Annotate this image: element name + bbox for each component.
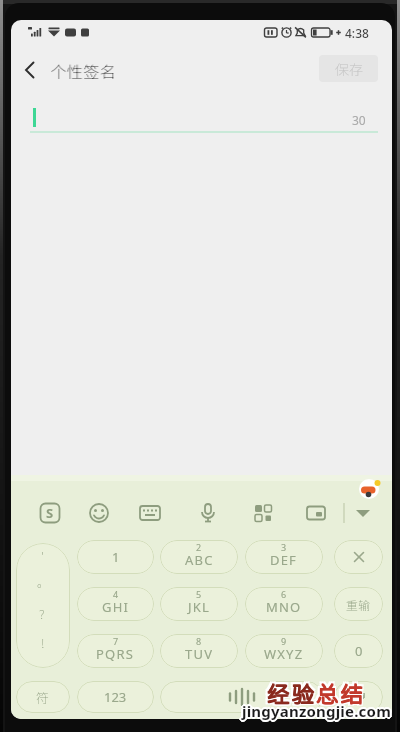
staticText: 经验总结 (265, 674, 364, 706)
button[interactable] (160, 681, 323, 713)
staticText: DEF (270, 551, 298, 569)
button[interactable] (334, 540, 383, 574)
button[interactable]: 3 (245, 540, 323, 574)
staticText: 经验总结 (267, 678, 366, 710)
button[interactable] (196, 501, 220, 525)
button[interactable]: 7 (77, 634, 154, 668)
button[interactable]: 2 (160, 540, 238, 574)
staticText: GHI (102, 598, 130, 616)
button[interactable]: S (38, 501, 62, 525)
staticText: 5 (196, 588, 202, 600)
staticText: 保存 (335, 59, 363, 79)
staticText: 经验总结 (265, 676, 364, 708)
staticText: 7 (113, 635, 119, 647)
staticText: PQRS (96, 645, 135, 663)
button[interactable] (138, 501, 162, 525)
button[interactable]: 保存 (319, 55, 378, 82)
staticText: 经验总结 (265, 678, 364, 710)
staticText: ABC (185, 551, 214, 569)
button[interactable] (304, 501, 328, 525)
staticText: ! (41, 633, 45, 652)
button[interactable]: 1 (77, 540, 154, 574)
staticText: jingyanzongjie.com (241, 702, 390, 722)
staticText: jingyanzongjie.com (243, 700, 392, 720)
staticText: WXYZ (264, 645, 304, 663)
staticText: 9 (281, 635, 287, 647)
staticText: 经验总结 (268, 677, 367, 709)
staticText: 4:38 (345, 25, 369, 41)
staticText: ? (39, 604, 45, 623)
staticText: 经验总结 (267, 676, 366, 708)
staticText: 1 (112, 548, 120, 566)
staticText: jingyanzongjie.com (242, 703, 391, 723)
staticText: 。 (37, 573, 50, 590)
button[interactable]: 5 (160, 587, 238, 621)
staticText: 123 (104, 688, 127, 706)
staticText: 0 (355, 642, 363, 660)
button[interactable]: 9 (245, 634, 323, 668)
button[interactable]: 4 (77, 587, 154, 621)
button[interactable] (16, 543, 70, 668)
staticText: jingyanzongjie.com (243, 702, 392, 722)
staticText: 2 (196, 541, 202, 553)
staticText: S (46, 504, 54, 522)
staticText: 符 (36, 688, 50, 707)
staticText: jingyanzongjie.com (241, 700, 390, 720)
staticText: JKL (188, 598, 211, 616)
button[interactable] (251, 501, 275, 525)
staticText: 经验总结 (267, 674, 366, 706)
staticText: 经验总结 (267, 676, 366, 708)
staticText: 4 (113, 588, 119, 600)
button[interactable] (87, 501, 111, 525)
staticText: jingyanzongjie.com (240, 701, 389, 721)
staticText: 8 (196, 635, 202, 647)
staticText: 经验总结 (269, 676, 368, 708)
button[interactable]: 8 (160, 634, 238, 668)
staticText: jingyanzongjie.com (242, 701, 391, 721)
staticText: 6 (281, 588, 287, 600)
staticText: jingyanzongjie.com (244, 701, 393, 721)
button[interactable]: 重输 (334, 587, 383, 621)
staticText: 个性签名 (51, 59, 118, 82)
staticText: 30 (352, 112, 366, 128)
button[interactable]: 123 (77, 681, 154, 713)
button[interactable]: 符 (16, 681, 70, 713)
staticText: 重输 (346, 596, 371, 613)
staticText: 经验总结 (269, 678, 368, 710)
staticText: 3 (281, 541, 287, 553)
staticText: 个性签名 (50, 59, 117, 82)
staticText: jingyanzongjie.com (242, 699, 391, 719)
staticText: 经验总结 (267, 677, 366, 709)
button[interactable]: 0 (334, 634, 383, 668)
button[interactable]: 6 (245, 587, 323, 621)
staticText: TUV (185, 645, 214, 663)
button[interactable] (334, 681, 383, 713)
staticText: 经验总结 (269, 674, 368, 706)
staticText: 经验总结 (268, 676, 367, 708)
button[interactable] (20, 60, 40, 80)
staticText: ' (41, 547, 45, 566)
staticText: MNO (266, 598, 302, 616)
